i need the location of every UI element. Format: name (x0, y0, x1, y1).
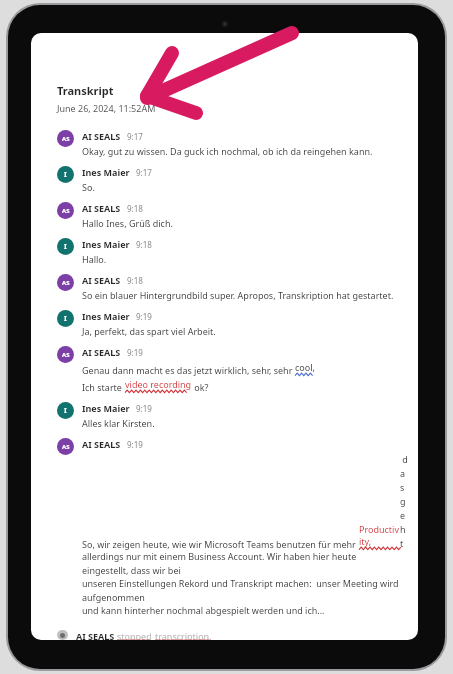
button[interactable]: Avatar AS (57, 346, 74, 363)
staticText: AI SEALS (82, 438, 121, 450)
staticText: Okay, gut zu wissen. Da guck ich nochmal… (82, 145, 373, 157)
staticText: AS (62, 443, 70, 451)
button[interactable]: Avatar AS (57, 438, 74, 455)
button[interactable]: Avatar AS (57, 429, 400, 616)
staticText: So ein blauer Hintergrundbild super. Apr… (82, 289, 394, 301)
staticText: AI SEALS (82, 202, 121, 214)
staticText: allerdings nur mit einem Business Accoun… (82, 550, 400, 577)
staticText: I (64, 406, 67, 416)
staticText: 9:18 (136, 239, 152, 250)
staticText: June 26, 2024, 11:52AM (57, 102, 156, 114)
staticText: 9:19 (136, 403, 152, 414)
button[interactable]: Avatar AS (57, 337, 400, 393)
staticText: 9:18 (127, 203, 143, 214)
staticText: Genau dann macht es das jetzt wirklich, … (82, 364, 295, 376)
staticText: So, wir zeigen heute, wie wir Microsoft … (82, 538, 359, 550)
button[interactable]: Avatar AS (57, 121, 400, 157)
staticText: Ines Maier (82, 310, 130, 322)
button[interactable]: Avatar AS (57, 130, 74, 147)
staticText: Ja, perfekt, das spart viel Arbeit. (82, 325, 216, 337)
staticText: 9:18 (127, 275, 143, 286)
button[interactable]: AI SEALS (57, 630, 400, 640)
staticText: AS (62, 135, 70, 143)
button[interactable]: Avatar AS (57, 265, 400, 301)
staticText: AI SEALS (82, 346, 121, 358)
button[interactable]: Avatar I (57, 157, 400, 193)
button[interactable]: Avatar I (57, 166, 74, 183)
staticText: 9:17 (127, 131, 143, 142)
button[interactable]: Avatar I (57, 238, 74, 255)
staticText: Ines Maier (82, 238, 130, 250)
staticText: stopped (117, 630, 152, 640)
button[interactable]: Avatar I (57, 393, 400, 429)
staticText: und kann hinterher nochmal abgespielt we… (82, 604, 325, 616)
staticText: AI SEALS (82, 130, 121, 142)
button[interactable]: Avatar I (57, 301, 400, 337)
staticText: AS (62, 207, 70, 215)
staticText: Ich starte (82, 381, 125, 393)
staticText: Transkript (57, 83, 114, 98)
staticText: Hallo. (82, 253, 107, 265)
staticText: 9:19 (136, 311, 152, 322)
staticText: AS (62, 279, 70, 287)
staticText: I (64, 170, 67, 180)
button[interactable]: Avatar I (57, 402, 74, 419)
staticText: So. (82, 181, 95, 193)
staticText: ok? (192, 381, 209, 393)
staticText: Alles klar Kirsten. (82, 417, 155, 429)
staticText: AI SEALS (76, 630, 117, 640)
staticText: Ines Maier (82, 402, 130, 414)
button[interactable]: Avatar AS (57, 193, 400, 229)
staticText: I (64, 242, 67, 252)
staticText: 9:19 (127, 347, 143, 358)
staticText: 9:19 (127, 439, 143, 450)
staticText: AS (62, 351, 70, 359)
staticText: Ines Maier (82, 166, 130, 178)
button[interactable]: Avatar AS (57, 202, 74, 219)
staticText: unseren Einstellungen Rekord und Transkr… (82, 577, 400, 604)
button[interactable]: Avatar AS (57, 274, 74, 291)
staticText: Productivity, (359, 523, 400, 547)
staticText: 9:17 (136, 167, 152, 178)
staticText: cool, (295, 361, 315, 373)
staticText: Hallo Ines, Grüß dich. (82, 217, 173, 229)
staticText: AI SEALS (82, 274, 121, 286)
button[interactable]: Avatar I (57, 229, 400, 265)
staticText: I (64, 314, 67, 324)
staticText: video recording (125, 378, 192, 390)
staticText: transcription. (155, 630, 212, 640)
button[interactable]: Avatar I (57, 310, 74, 327)
